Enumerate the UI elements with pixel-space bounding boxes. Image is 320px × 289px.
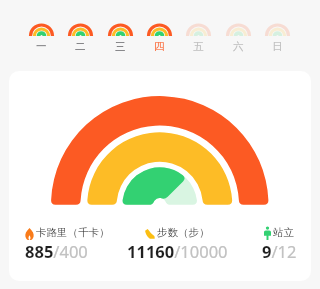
staticText: 一 [36,40,47,53]
staticText: 步数（步） [157,226,210,239]
staticText: 日 [272,40,283,53]
staticText: 四 [154,40,165,53]
staticText: 885/400 [25,240,88,262]
button[interactable]: 四 [140,6,179,60]
button[interactable]: 卡路里（千卡） [25,225,110,262]
button[interactable]: 站立 [229,225,320,262]
button[interactable]: 二 [61,6,100,60]
button[interactable]: 三 [101,6,140,60]
button[interactable]: 五 [179,6,218,60]
button[interactable]: 步数（步） [77,225,277,262]
staticText: 五 [193,40,204,53]
staticText: 卡路里（千卡） [36,226,110,239]
staticText: 三 [115,40,126,53]
button[interactable]: 一 [22,6,61,60]
staticText: 11160/10000 [127,240,228,262]
staticText: 9/12 [262,240,297,262]
staticText: 六 [233,40,244,53]
staticText: 二 [75,40,86,53]
staticText: 站立 [273,226,294,239]
button[interactable]: 六 [219,6,258,60]
button[interactable]: 日 [258,6,297,60]
